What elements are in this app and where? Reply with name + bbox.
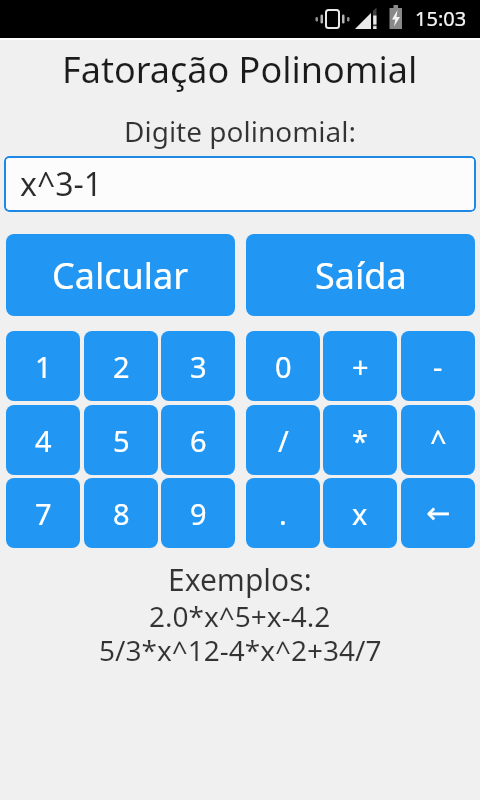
staticText: x^3-1 (20, 162, 103, 206)
staticText: * (352, 421, 368, 460)
staticText: ← (426, 496, 451, 530)
staticText: Exemplos: (168, 559, 312, 600)
button[interactable]: ← (401, 478, 475, 548)
button[interactable]: 0 (246, 331, 320, 401)
staticText: 8 (113, 494, 130, 533)
button[interactable]: 3 (161, 331, 235, 401)
staticText: 9 (190, 494, 207, 533)
button[interactable]: 8 (84, 478, 158, 548)
button[interactable]: 2 (84, 331, 158, 401)
button[interactable]: 5 (84, 405, 158, 475)
staticText: 2.0*x^5+x-4.2 (149, 597, 331, 635)
button[interactable]: + (323, 331, 397, 401)
button[interactable]: 6 (161, 405, 235, 475)
button[interactable]: . (246, 478, 320, 548)
staticText: Digite polinomial: (124, 112, 356, 150)
button[interactable]: 9 (161, 478, 235, 548)
staticText: 1 (35, 347, 52, 386)
button[interactable]: - (401, 331, 475, 401)
staticText: 3 (190, 347, 207, 386)
staticText: + (352, 347, 369, 386)
staticText: / (278, 421, 289, 460)
staticText: 7 (35, 494, 52, 533)
staticText: 2 (113, 347, 130, 386)
button[interactable]: * (323, 405, 397, 475)
staticText: 6 (190, 421, 207, 460)
button[interactable]: 4 (6, 405, 80, 475)
button[interactable]: 7 (6, 478, 80, 548)
staticText: 5 (113, 421, 130, 460)
button[interactable]: x^3-1 (4, 156, 476, 212)
button[interactable]: Calcular (6, 234, 235, 316)
staticText: Fatoração Polinomial (62, 45, 418, 94)
staticText: . (279, 494, 287, 533)
button[interactable]: / (246, 405, 320, 475)
staticText: x (352, 494, 368, 533)
staticText: ^ (430, 421, 447, 460)
button[interactable]: x (323, 478, 397, 548)
button[interactable]: Saída (246, 234, 475, 316)
staticText: 5/3*x^12-4*x^2+34/7 (99, 631, 382, 669)
button[interactable]: ^ (401, 405, 475, 475)
staticText: 0 (275, 347, 292, 386)
staticText: - (433, 347, 443, 386)
button[interactable]: 1 (6, 331, 80, 401)
staticText: 15:03 (415, 5, 467, 32)
staticText: Calcular (52, 251, 189, 300)
staticText: 4 (35, 421, 52, 460)
staticText: Saída (315, 251, 407, 300)
